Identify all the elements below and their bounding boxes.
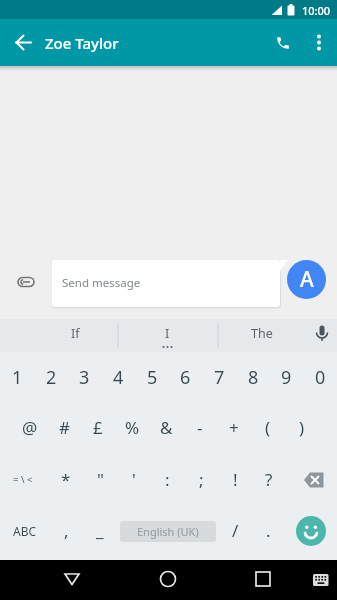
staticText: The — [251, 325, 273, 342]
staticText: English (UK) — [137, 524, 199, 539]
staticText: Zoe Taylor — [45, 33, 119, 53]
staticText: I — [165, 325, 170, 342]
staticText: 9 — [281, 365, 292, 390]
staticText: & — [160, 416, 173, 439]
staticText: 7 — [214, 365, 225, 390]
staticText: : — [165, 468, 170, 491]
staticText: 8 — [248, 365, 259, 390]
staticText: ' — [132, 468, 136, 491]
staticText: Send message — [62, 275, 141, 291]
staticText: A — [300, 265, 314, 294]
staticText: * — [61, 468, 71, 491]
staticText: If — [71, 325, 80, 342]
staticText: ABC — [13, 523, 37, 539]
staticText: 6 — [180, 365, 191, 390]
staticText: = \ < — [13, 473, 33, 486]
staticText: 2 — [46, 365, 57, 390]
staticText: @ — [22, 416, 38, 439]
staticText: / — [232, 519, 239, 542]
staticText: 4 — [113, 365, 124, 390]
staticText: - — [197, 416, 203, 439]
staticText: 0 — [315, 365, 326, 390]
staticText: + — [229, 416, 239, 439]
staticText: ! — [233, 468, 238, 491]
staticText: ) — [299, 416, 305, 439]
staticText: % — [125, 416, 140, 439]
staticText: 10:00 — [302, 3, 331, 18]
staticText: 5 — [147, 365, 158, 390]
staticText: 3 — [79, 365, 90, 390]
staticText: " — [97, 468, 104, 491]
staticText: 1 — [12, 365, 23, 390]
staticText: ( — [265, 416, 271, 439]
staticText: ; — [199, 468, 204, 491]
staticText: . — [266, 519, 271, 542]
staticText: # — [59, 416, 70, 439]
staticText: , — [64, 519, 69, 542]
staticText: _ — [96, 519, 104, 542]
staticText: ? — [265, 468, 273, 491]
staticText: £ — [93, 416, 103, 439]
